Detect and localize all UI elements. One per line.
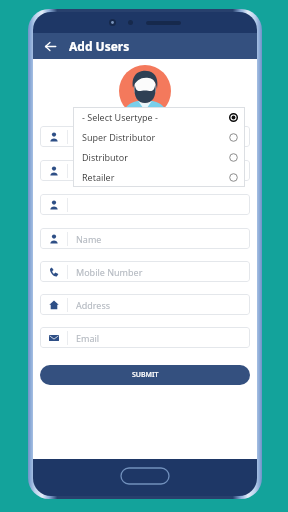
button[interactable]: Distributor (73, 147, 245, 167)
staticText: Address (76, 299, 111, 311)
button[interactable]: Email (40, 327, 250, 348)
staticText: - Select Usertype - (82, 111, 229, 123)
staticText: Name (76, 233, 102, 245)
button[interactable]: - Select Usertype - (73, 107, 245, 127)
button[interactable]: Name (40, 228, 250, 249)
button[interactable]: Super Distributor (73, 127, 245, 147)
staticText: Add Users (69, 38, 130, 54)
button[interactable]: Retailer (73, 167, 245, 187)
button[interactable] (40, 160, 250, 181)
button[interactable]: Mobile Number (40, 261, 250, 282)
staticText: Retailer (82, 171, 229, 183)
button[interactable] (40, 126, 250, 147)
staticText: Mobile Number (76, 266, 143, 278)
staticText: Super Distributor (82, 131, 229, 143)
staticText: SUBMIT (132, 370, 159, 380)
button[interactable]: Home (121, 468, 169, 484)
staticText: Distributor (82, 151, 229, 163)
button[interactable] (40, 194, 250, 215)
staticText: Email (76, 332, 100, 344)
button[interactable]: Back (40, 36, 60, 56)
button[interactable]: SUBMIT (40, 365, 250, 385)
button[interactable]: Address (40, 294, 250, 315)
